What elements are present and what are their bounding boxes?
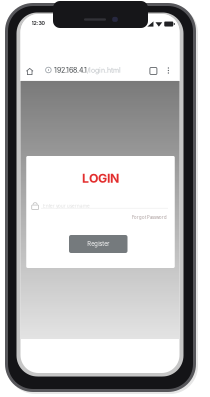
staticText: /login.html <box>87 66 121 74</box>
staticText: Enter your username <box>43 203 90 209</box>
button[interactable]: Forgot Password <box>125 214 167 220</box>
staticText: 12:30 <box>31 20 44 26</box>
button[interactable]: Menu <box>166 66 171 75</box>
staticText: Forgot Password <box>132 215 167 220</box>
button[interactable]: Register <box>69 235 127 253</box>
button[interactable]: Home <box>25 66 35 76</box>
staticText: Register <box>87 240 109 247</box>
staticText: 192.168.4.1 <box>54 66 87 74</box>
staticText: LOGIN <box>82 171 119 186</box>
button[interactable]: Tabs <box>148 66 158 76</box>
